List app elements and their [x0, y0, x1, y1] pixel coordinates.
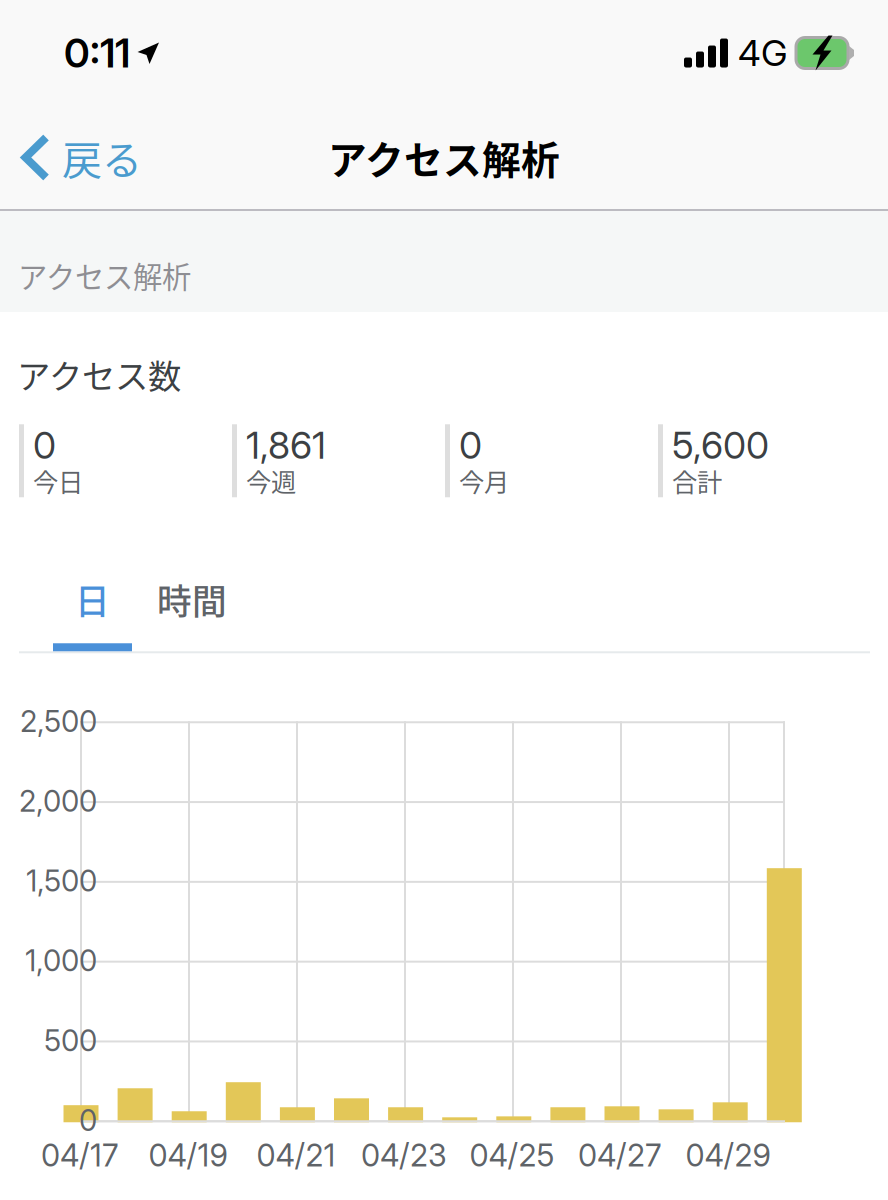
staticText: 日 — [75, 574, 110, 624]
staticText: 04/25 — [469, 1137, 554, 1174]
staticText: 今週 — [246, 462, 296, 499]
staticText: 戻る — [62, 128, 142, 186]
staticText: 1,000 — [25, 943, 97, 978]
staticText: アクセス数 — [17, 350, 181, 398]
staticText: 04/17 — [41, 1137, 119, 1174]
staticText: アクセス解析 — [328, 129, 560, 185]
staticText: 0 — [79, 1102, 97, 1138]
staticText: 4G — [738, 31, 787, 75]
button[interactable]: 日 — [53, 555, 132, 643]
staticText: 2,000 — [19, 783, 97, 819]
staticText: 04/29 — [685, 1137, 770, 1174]
staticText: 1,861 — [246, 423, 326, 468]
staticText: 今月 — [459, 462, 509, 499]
staticText: 04/27 — [578, 1137, 662, 1174]
staticText: 0 — [33, 423, 56, 468]
staticText: 04/23 — [361, 1137, 447, 1174]
staticText: アクセス解析 — [18, 254, 191, 296]
staticText: 2,500 — [20, 703, 97, 739]
staticText: 5,600 — [672, 423, 769, 468]
button[interactable]: 時間 — [132, 555, 252, 643]
staticText: 500 — [44, 1023, 97, 1058]
staticText: 04/21 — [256, 1137, 335, 1174]
button[interactable]: 戻る — [0, 106, 158, 209]
staticText: 04/19 — [148, 1137, 227, 1174]
staticText: 0:11 — [64, 29, 130, 77]
staticText: 時間 — [157, 574, 227, 624]
staticText: 今日 — [33, 462, 83, 499]
staticText: 合計 — [672, 462, 722, 499]
staticText: 0 — [459, 423, 482, 468]
staticText: 1,500 — [26, 863, 97, 899]
